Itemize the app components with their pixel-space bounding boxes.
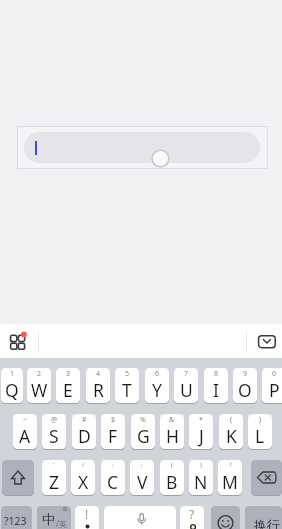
staticText: J	[199, 424, 204, 448]
button[interactable]: &	[160, 414, 184, 449]
staticText: /	[82, 461, 85, 469]
button[interactable]	[6, 331, 28, 353]
staticText: '	[53, 461, 55, 469]
staticText: P	[269, 378, 280, 402]
staticText: L	[255, 424, 265, 448]
staticText: /英	[56, 518, 67, 529]
staticText: %	[140, 415, 146, 425]
button[interactable]	[251, 460, 282, 495]
staticText: R	[93, 378, 104, 402]
button[interactable]: ?	[218, 460, 242, 495]
staticText: W	[31, 378, 48, 402]
button[interactable]: '	[42, 460, 66, 495]
button[interactable]: *	[189, 414, 213, 449]
staticText: 中	[42, 511, 56, 528]
staticText: (	[230, 415, 233, 425]
button[interactable]	[211, 506, 240, 529]
staticText: #	[82, 415, 87, 425]
staticText: B	[166, 470, 178, 494]
staticText: T	[122, 378, 132, 402]
staticText: N	[194, 470, 208, 494]
staticText: V	[137, 470, 148, 494]
staticText: E	[63, 378, 73, 402]
staticText: $	[111, 415, 116, 425]
button[interactable]: #	[72, 414, 96, 449]
staticText: 7	[184, 369, 189, 379]
staticText: (	[171, 461, 173, 469]
button[interactable]: (	[219, 414, 243, 449]
staticText: 3	[66, 369, 71, 379]
button[interactable]: $	[101, 414, 125, 449]
button[interactable]: 1	[1, 368, 23, 403]
button[interactable]: 中	[37, 506, 71, 529]
button[interactable]: ;	[130, 460, 154, 495]
staticText: Y	[152, 378, 162, 402]
button[interactable]: 8	[204, 368, 228, 403]
staticText: G	[137, 424, 150, 448]
button[interactable]: /	[71, 460, 95, 495]
staticText: *	[199, 415, 203, 425]
staticText: H	[166, 424, 179, 448]
staticText: Q	[5, 378, 19, 402]
button[interactable]: !	[75, 506, 99, 529]
staticText: 8	[214, 369, 219, 379]
button[interactable]: :	[101, 460, 125, 495]
button[interactable]: )	[189, 460, 213, 495]
button[interactable]: 3	[56, 368, 80, 403]
button[interactable]: @	[42, 414, 66, 449]
button[interactable]: ?123	[1, 506, 32, 529]
staticText: X	[78, 470, 89, 494]
button[interactable]: 5	[115, 368, 139, 403]
button[interactable]: )	[248, 414, 272, 449]
button[interactable]: %	[131, 414, 155, 449]
button[interactable]	[2, 460, 34, 495]
staticText: )	[200, 461, 202, 469]
staticText: ;	[141, 461, 143, 469]
staticText: I	[213, 378, 219, 402]
staticText: 1	[10, 369, 15, 379]
staticText: 4	[96, 369, 101, 379]
button[interactable]: 7	[174, 368, 198, 403]
button[interactable]	[104, 506, 176, 529]
staticText: 0	[272, 369, 277, 379]
staticText: !	[85, 506, 89, 522]
button[interactable]: ?	[180, 506, 204, 529]
staticText: A	[19, 424, 31, 448]
staticText: &	[169, 415, 175, 425]
staticText: C	[107, 470, 119, 494]
staticText: F	[108, 424, 118, 448]
button[interactable]: 2	[27, 368, 51, 403]
staticText: Z	[49, 470, 60, 494]
staticText: )	[259, 415, 262, 425]
staticText: 6	[155, 369, 160, 379]
button[interactable]	[24, 132, 260, 163]
staticText: D	[78, 424, 91, 448]
button[interactable]: 0	[262, 368, 282, 403]
staticText: @	[51, 415, 58, 425]
staticText: S	[49, 424, 59, 448]
staticText: K	[226, 424, 237, 448]
button[interactable]: 9	[233, 368, 257, 403]
staticText: ?123	[4, 514, 27, 528]
staticText: ?	[229, 461, 232, 469]
button[interactable]: ~	[13, 414, 37, 449]
staticText: M	[222, 470, 238, 494]
staticText: 换行	[254, 517, 280, 529]
staticText: 2	[37, 369, 42, 379]
staticText: :	[112, 461, 114, 469]
button[interactable]: (	[160, 460, 184, 495]
staticText: U	[180, 378, 193, 402]
button[interactable]: 4	[86, 368, 110, 403]
staticText: 9	[243, 369, 248, 379]
staticText: ?	[189, 506, 195, 522]
staticText: O	[238, 378, 252, 402]
button[interactable]	[252, 330, 282, 354]
button[interactable]: 换行	[245, 506, 282, 529]
button[interactable]: 6	[145, 368, 169, 403]
staticText: 5	[125, 369, 130, 379]
staticText: ~	[23, 415, 28, 425]
